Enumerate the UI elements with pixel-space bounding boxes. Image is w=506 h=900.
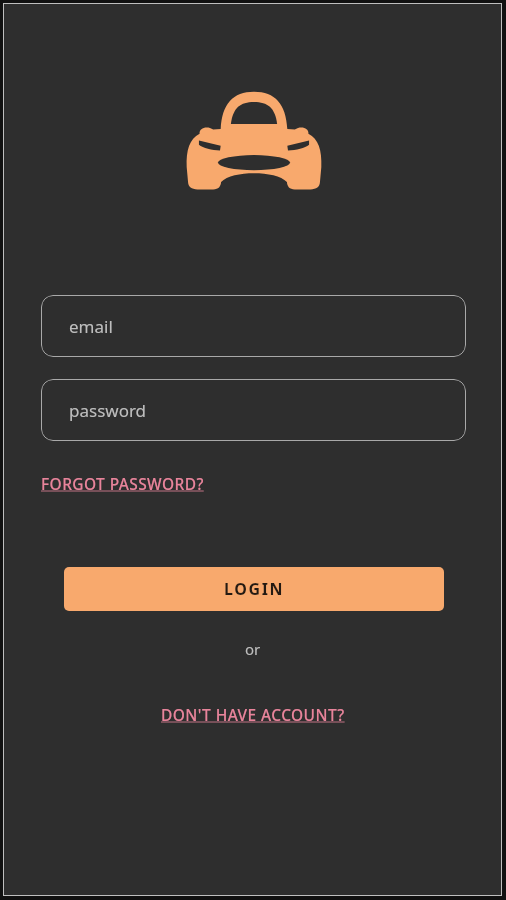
- other: App logo: [186, 88, 322, 192]
- button[interactable]: DON'T HAVE ACCOUNT?: [161, 700, 345, 728]
- staticText: DON'T HAVE ACCOUNT?: [161, 704, 345, 725]
- staticText: LOGIN: [224, 578, 285, 600]
- button[interactable]: LOGIN: [64, 567, 444, 611]
- staticText: FORGOT PASSWORD?: [41, 473, 204, 494]
- button[interactable]: password: [41, 379, 466, 441]
- staticText: password: [69, 399, 147, 422]
- button[interactable]: FORGOT PASSWORD?: [41, 469, 204, 497]
- staticText: or: [245, 639, 261, 659]
- button[interactable]: email: [41, 295, 466, 357]
- staticText: email: [69, 315, 113, 338]
